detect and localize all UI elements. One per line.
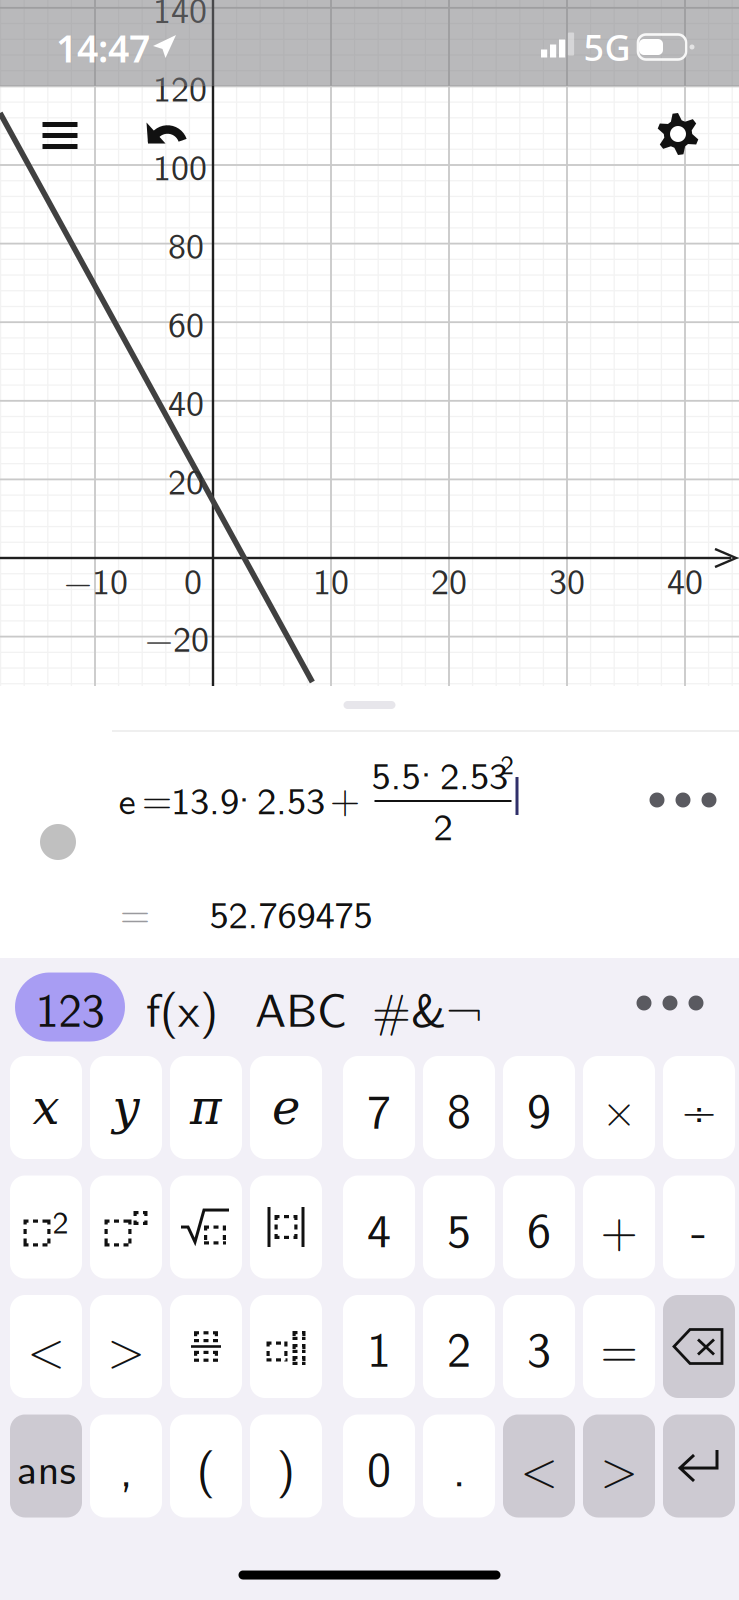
- staticText: 13.9: [171, 770, 239, 826]
- staticText: 4: [367, 1192, 391, 1262]
- staticText: 3: [527, 1311, 551, 1382]
- staticText: 20: [431, 553, 467, 605]
- staticText: 5: [447, 1192, 471, 1262]
- button[interactable]: 4: [343, 1175, 415, 1278]
- button[interactable]: 1: [343, 1295, 415, 1398]
- button[interactable]: 0: [343, 1414, 415, 1517]
- button[interactable]: 5: [423, 1175, 495, 1278]
- staticText: −20: [145, 610, 209, 663]
- staticText: ×: [602, 1075, 636, 1140]
- staticText: 52.769475: [209, 884, 372, 940]
- staticText: π: [190, 1080, 222, 1135]
- button[interactable]: >: [583, 1414, 655, 1517]
- button[interactable]: 6: [503, 1175, 575, 1278]
- button[interactable]: e: [250, 1056, 322, 1159]
- staticText: 140: [153, 0, 207, 34]
- button[interactable]: Row options: [637, 754, 729, 846]
- staticText: 2: [447, 1311, 471, 1382]
- staticText: 7: [367, 1072, 391, 1143]
- staticText: 60: [168, 296, 204, 349]
- staticText: 2.53: [440, 745, 508, 801]
- staticText: 2: [52, 1197, 68, 1243]
- button[interactable]: >: [90, 1295, 162, 1398]
- button[interactable]: [663, 1414, 735, 1517]
- button[interactable]: 9: [503, 1056, 575, 1159]
- staticText: ): [276, 1431, 295, 1501]
- staticText: 1: [367, 1311, 391, 1382]
- staticText: f(x): [146, 973, 218, 1041]
- staticText: 14:47: [56, 23, 150, 73]
- staticText: 2: [500, 743, 513, 782]
- staticText: =: [120, 883, 150, 939]
- staticText: 0: [367, 1431, 391, 1501]
- button[interactable]: More keyboard options: [628, 968, 712, 1037]
- button[interactable]: =: [583, 1295, 655, 1398]
- button[interactable]: y: [90, 1056, 162, 1159]
- button[interactable]: [663, 1295, 735, 1398]
- staticText: =: [600, 1311, 637, 1382]
- staticText: e: [272, 1080, 300, 1135]
- staticText: 9: [527, 1072, 551, 1143]
- button[interactable]: 8: [423, 1056, 495, 1159]
- staticText: +: [600, 1192, 637, 1262]
- button[interactable]: x: [10, 1056, 82, 1159]
- staticText: y: [112, 1080, 139, 1135]
- staticText: x: [32, 1080, 59, 1135]
- staticText: 6: [527, 1192, 551, 1262]
- staticText: 0: [184, 553, 202, 605]
- button[interactable]: ans: [10, 1414, 82, 1517]
- staticText: 30: [549, 553, 585, 605]
- button[interactable]: Menu: [25, 99, 95, 169]
- button[interactable]: [250, 1175, 322, 1278]
- staticText: 10: [313, 553, 349, 605]
- button[interactable]: 3: [503, 1295, 575, 1398]
- button[interactable]: 2: [423, 1295, 495, 1398]
- button[interactable]: 7: [343, 1056, 415, 1159]
- button[interactable]: .: [423, 1414, 495, 1517]
- staticText: -: [691, 1192, 707, 1262]
- staticText: <: [520, 1431, 557, 1501]
- button[interactable]: ,: [90, 1414, 162, 1517]
- staticText: 120: [153, 60, 207, 113]
- staticText: 2.53: [257, 770, 325, 826]
- button[interactable]: π: [170, 1056, 242, 1159]
- staticText: ,: [119, 1431, 132, 1501]
- button[interactable]: (: [170, 1414, 242, 1517]
- button[interactable]: <: [10, 1295, 82, 1398]
- button[interactable]: ×: [583, 1056, 655, 1159]
- button[interactable]: [90, 1175, 162, 1278]
- staticText: 100: [153, 139, 207, 191]
- staticText: ·: [411, 744, 441, 800]
- button[interactable]: [250, 1295, 322, 1398]
- staticText: ÷: [682, 1075, 716, 1140]
- staticText: 123: [35, 973, 104, 1041]
- staticText: +: [330, 769, 360, 825]
- staticText: 40: [667, 553, 703, 605]
- staticText: ABC: [255, 973, 347, 1041]
- button[interactable]: ÷: [663, 1056, 735, 1159]
- staticText: >: [600, 1431, 637, 1501]
- button[interactable]: -: [663, 1175, 735, 1278]
- staticText: #&¬: [372, 973, 482, 1041]
- staticText: <: [27, 1311, 64, 1382]
- button[interactable]: ABC: [251, 972, 351, 1041]
- staticText: e: [118, 770, 135, 826]
- button[interactable]: +: [583, 1175, 655, 1278]
- button[interactable]: 2: [10, 1175, 82, 1278]
- staticText: 20: [168, 453, 204, 506]
- staticText: 2: [433, 796, 452, 852]
- staticText: ·: [229, 769, 259, 825]
- button[interactable]: <: [503, 1414, 575, 1517]
- button[interactable]: f(x): [136, 972, 228, 1041]
- staticText: 5.5: [371, 745, 420, 801]
- button[interactable]: [170, 1295, 242, 1398]
- button[interactable]: 123: [15, 972, 125, 1041]
- button[interactable]: Settings: [643, 99, 713, 169]
- button[interactable]: ): [250, 1414, 322, 1517]
- button[interactable]: [170, 1175, 242, 1278]
- staticText: 8: [447, 1072, 471, 1143]
- staticText: ans: [16, 1435, 75, 1497]
- button[interactable]: #&¬: [375, 972, 479, 1041]
- staticText: (: [196, 1431, 215, 1501]
- button[interactable]: Undo: [131, 99, 201, 169]
